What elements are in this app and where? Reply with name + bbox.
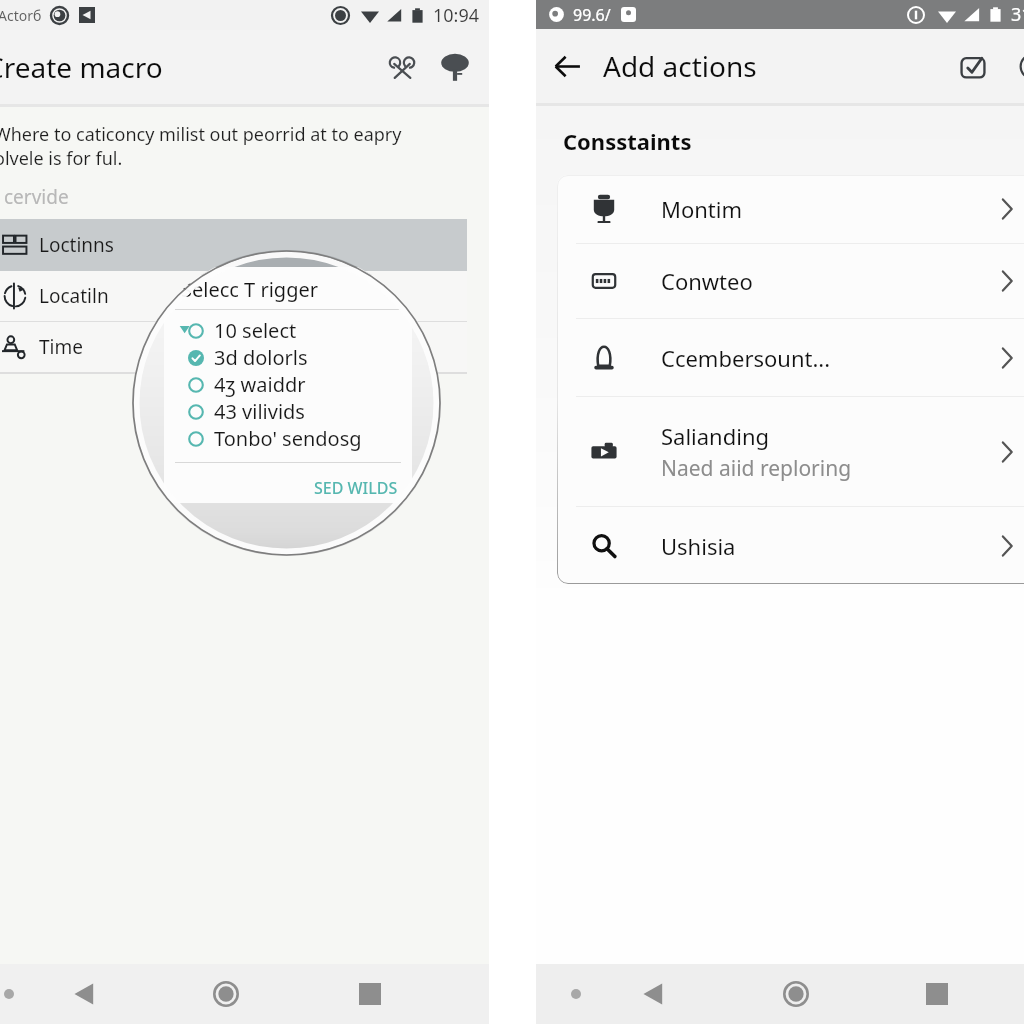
staticText: Locatiln	[39, 283, 109, 309]
staticText: 4ʒ waiddr	[214, 371, 306, 398]
staticText: Naed aiid reploring	[661, 454, 852, 483]
staticText: Ushisia	[661, 531, 736, 561]
staticText: Time	[39, 334, 83, 360]
button[interactable]: Time	[0, 322, 467, 372]
staticText: SED WILDS	[314, 477, 398, 499]
staticText: Create macro	[0, 48, 163, 86]
staticText: Salianding	[661, 421, 770, 451]
staticText: Add actions	[603, 47, 757, 85]
button[interactable]: 43 vilivids	[164, 398, 412, 425]
staticText: Montim	[661, 194, 743, 224]
staticText: Selecc T rigger	[181, 276, 318, 303]
staticText: 3d dolorls	[214, 344, 308, 371]
staticText: 99.6/	[573, 4, 611, 26]
staticText: 31	[1011, 2, 1024, 27]
staticText: 10 select	[214, 317, 297, 344]
button[interactable]: SED WILDS	[308, 474, 404, 502]
button[interactable]: More options	[1008, 42, 1024, 90]
button[interactable]: Conwteo	[557, 244, 1024, 318]
staticText: Consstaints	[563, 126, 692, 156]
staticText: cervide	[4, 184, 69, 210]
button[interactable]: Loctinns	[0, 219, 467, 271]
button[interactable]: Home	[773, 971, 819, 1017]
button[interactable]: Tonbo' sendosg	[164, 425, 412, 452]
staticText: 43 vilivids	[214, 398, 305, 425]
staticText: Where to caticoncy milist out peorrid at…	[0, 122, 402, 170]
button[interactable]: More options	[430, 42, 480, 92]
button[interactable]: Back	[62, 971, 108, 1017]
button[interactable]: Link macro	[377, 42, 427, 92]
button[interactable]: 3d dolorls	[164, 344, 412, 371]
button[interactable]: Ushisia	[557, 507, 1024, 584]
staticText: Tonbo' sendosg	[214, 425, 362, 452]
staticText: Conwteo	[661, 266, 753, 296]
button[interactable]: Home	[203, 971, 249, 1017]
button[interactable]: Recent apps	[347, 971, 393, 1017]
button[interactable]: Select all	[949, 42, 997, 90]
button[interactable]: Salianding	[557, 397, 1024, 506]
button[interactable]: Recent apps	[914, 971, 960, 1017]
button[interactable]: Ccembersount...	[557, 319, 1024, 396]
button[interactable]: Locatiln	[0, 271, 467, 321]
button[interactable]: 4ʒ waiddr	[164, 371, 412, 398]
staticText: Actorб	[0, 6, 42, 25]
staticText: Ccembersount...	[661, 343, 831, 373]
button[interactable]: Back	[548, 47, 586, 85]
button[interactable]: 10 select	[164, 317, 412, 344]
button[interactable]: Back	[631, 971, 677, 1017]
staticText: Loctinns	[39, 232, 114, 258]
staticText: 10:94	[433, 3, 480, 28]
button[interactable]: Montim	[557, 175, 1024, 243]
